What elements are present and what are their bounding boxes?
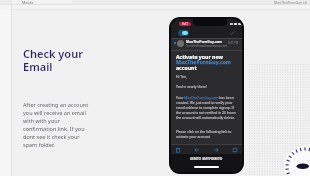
staticText: 9:41 PM xyxy=(228,41,239,45)
staticText: Your MaxThePornGuy.com has been created.… xyxy=(176,95,236,120)
staticText: You're nearly there! xyxy=(176,84,207,89)
staticText: Activate your new xyxy=(176,53,223,60)
button[interactable]: Mail action xyxy=(174,146,182,154)
button[interactable]: Mail action xyxy=(212,146,220,154)
staticText: Hi Tim, xyxy=(176,74,188,79)
staticText: 9:41 xyxy=(182,22,188,26)
staticText: After creating an account you will recei… xyxy=(23,101,89,149)
staticText: #EMTO #MYFOMETO xyxy=(190,157,223,161)
staticText: MaxThePornGuy.ch xyxy=(274,0,307,4)
button[interactable]: Mobile xyxy=(12,0,72,4)
staticText: MaxThePornGuy.com xyxy=(176,58,231,65)
button[interactable]: Done xyxy=(229,30,235,36)
button[interactable]: Mail action xyxy=(231,146,239,154)
staticText: MaxThePornGuy.com xyxy=(186,39,222,44)
staticText: Mobile xyxy=(22,0,34,4)
staticText: account xyxy=(176,64,197,71)
staticText: To: hello@maxtheporngguy.com > xyxy=(186,44,228,47)
button[interactable]: Badge xyxy=(284,146,310,176)
button[interactable]: Back xyxy=(178,30,189,36)
button[interactable]: Mail action xyxy=(193,146,201,154)
staticText: Check your Email xyxy=(23,46,83,74)
staticText: Please click on the following link to ac… xyxy=(176,129,232,139)
